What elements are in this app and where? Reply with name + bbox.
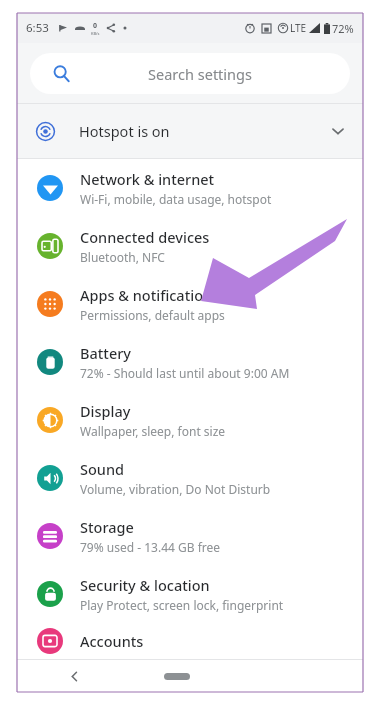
other: Expand (331, 124, 345, 138)
staticText: 72% (332, 21, 354, 36)
button[interactable]: Network & internet (17, 159, 363, 217)
staticText: Apps & notifications (80, 285, 220, 305)
button[interactable]: Hotspot is on (17, 104, 363, 158)
staticText: Wallpaper, sleep, font size (80, 423, 226, 439)
staticText: Bluetooth, NFC (80, 249, 165, 265)
staticText: Connected devices (80, 227, 210, 247)
button[interactable]: Apps & notifications (17, 275, 363, 333)
staticText: Wi-Fi, mobile, data usage, hotspot (80, 191, 272, 207)
button[interactable]: Battery (17, 333, 363, 391)
staticText: Accounts (80, 631, 144, 651)
staticText: Permissions, default apps (80, 307, 225, 323)
button[interactable]: Connected devices (17, 217, 363, 275)
button[interactable]: Accounts (17, 623, 363, 659)
staticText: 0 (93, 21, 98, 31)
staticText: Sound (80, 459, 125, 479)
button[interactable]: Search settings (30, 53, 350, 94)
button[interactable]: Back (17, 660, 132, 692)
staticText: Network & internet (80, 169, 215, 189)
staticText: Battery (80, 343, 131, 363)
button[interactable]: Storage (17, 507, 363, 565)
staticText: Search settings (148, 64, 252, 84)
staticText: Hotspot is on (79, 121, 170, 141)
staticText: KB/s (91, 31, 100, 36)
button[interactable]: Security & location (17, 565, 363, 623)
staticText: Play Protect, screen lock, fingerprint (80, 597, 284, 613)
staticText: Storage (80, 517, 134, 537)
staticText: Security & location (80, 575, 210, 595)
button[interactable]: Sound (17, 449, 363, 507)
staticText: 6:53 (26, 20, 49, 36)
staticText: LTE (290, 21, 307, 35)
button[interactable]: Home (132, 660, 222, 692)
staticText: Display (80, 401, 131, 421)
button[interactable]: Display (17, 391, 363, 449)
staticText: 79% used - 13.44 GB free (80, 539, 221, 555)
staticText: Volume, vibration, Do Not Disturb (80, 481, 271, 497)
staticText: 72% - Should last until about 9:00 AM (80, 365, 290, 381)
